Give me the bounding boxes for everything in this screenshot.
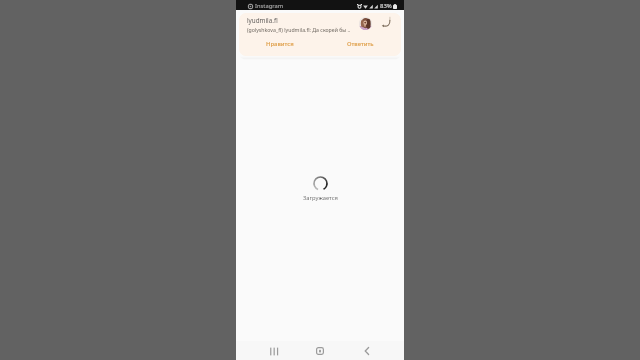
staticText: Загружается — [303, 194, 338, 202]
button[interactable]: Back — [360, 344, 374, 358]
button[interactable]: Home — [313, 344, 327, 358]
button[interactable]: Нравится — [239, 37, 320, 50]
staticText: (golyshkova_fl) lyudmila.fl: Да скорей б… — [247, 26, 351, 33]
staticText: 83% — [380, 2, 392, 10]
button[interactable]: lyudmila.fl — [239, 13, 401, 56]
staticText: lyudmila.fl — [247, 16, 278, 25]
staticText: Нравится — [266, 40, 294, 48]
staticText: Instagram — [255, 2, 284, 10]
button[interactable]: Reply — [380, 17, 391, 28]
button[interactable]: Recent apps — [266, 344, 280, 358]
staticText: Ответить — [347, 40, 374, 48]
button[interactable]: Ответить — [320, 37, 401, 50]
